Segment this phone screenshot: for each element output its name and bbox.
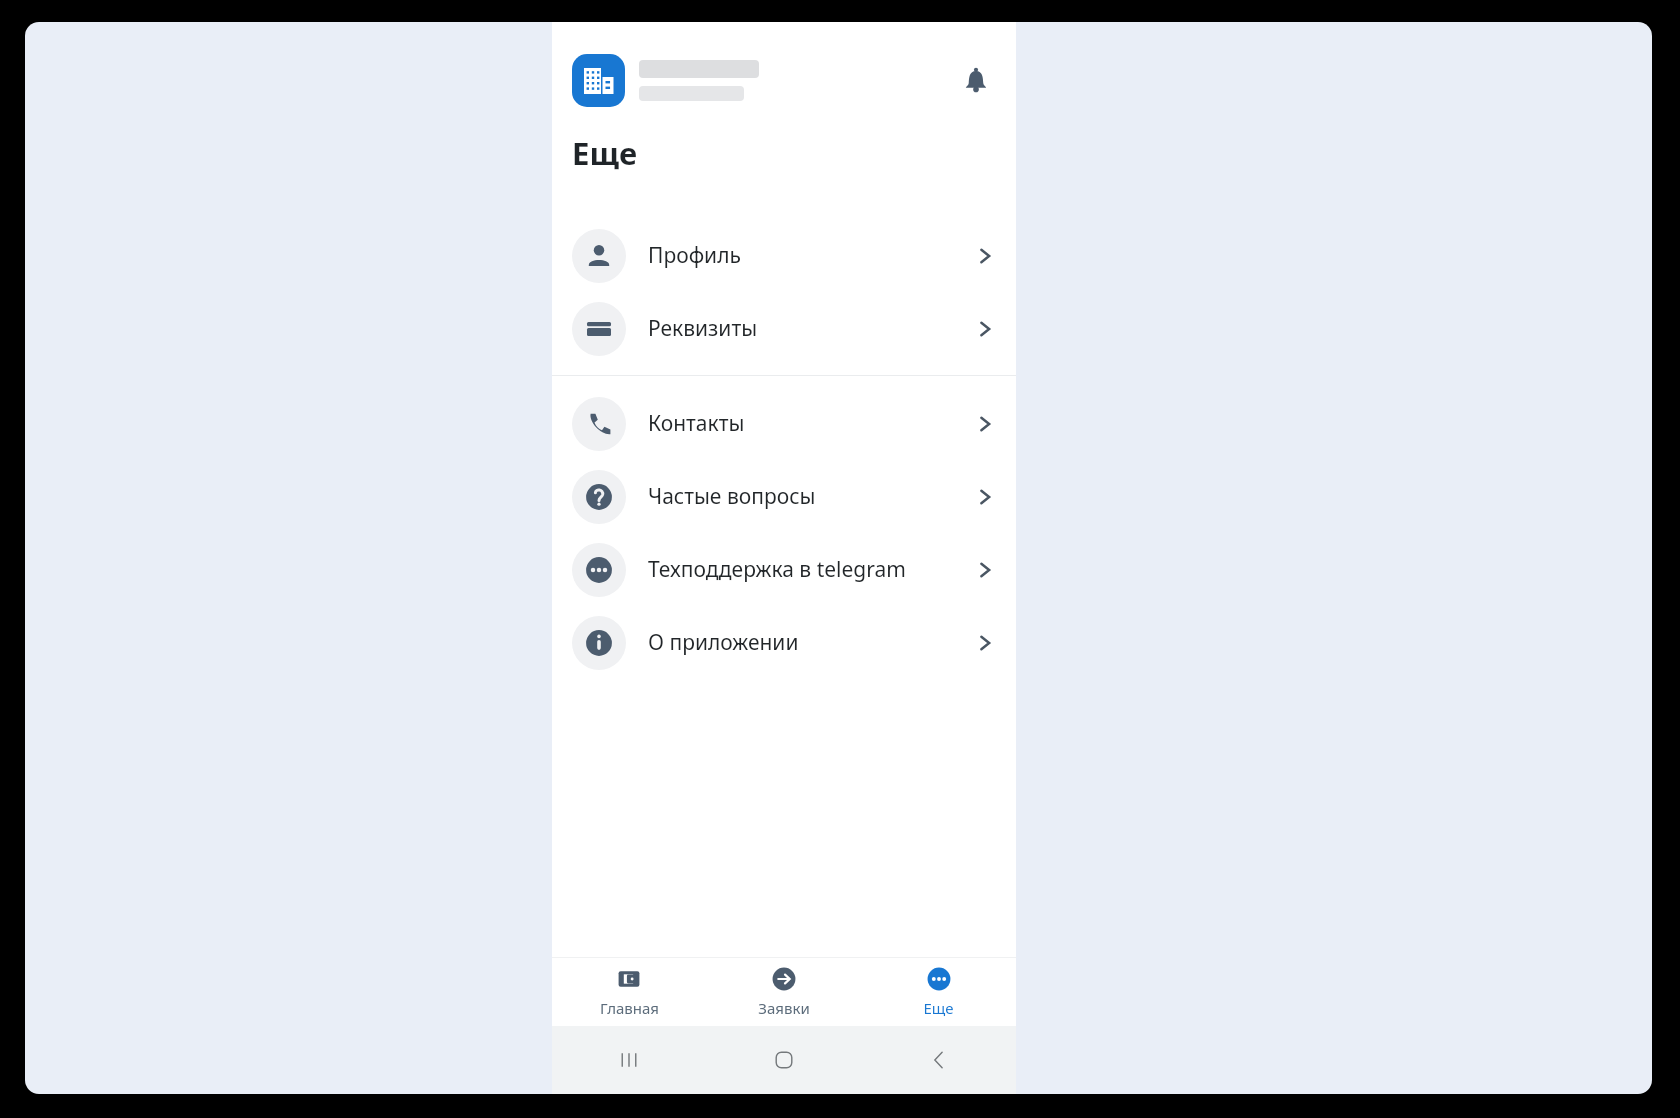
button[interactable]: Частые вопросы	[552, 460, 1016, 533]
staticText: О приложении	[648, 628, 972, 657]
button[interactable]: О приложении	[552, 606, 1016, 679]
staticText: Техподдержка в telegram	[648, 555, 972, 584]
staticText: Профиль	[648, 241, 972, 270]
button[interactable]: Главная	[552, 958, 706, 1026]
button[interactable]: Техподдержка в telegram	[552, 533, 1016, 606]
button[interactable]: Заявки	[706, 958, 861, 1026]
button[interactable]: Профиль	[552, 219, 1016, 292]
staticText: Частые вопросы	[648, 482, 972, 511]
staticText: Главная	[600, 998, 659, 1018]
button[interactable]: Еще	[861, 958, 1016, 1026]
staticText: Контакты	[648, 409, 972, 438]
button[interactable]: Company logo	[572, 54, 625, 107]
staticText: Заявки	[758, 998, 810, 1018]
button[interactable]: Контакты	[552, 387, 1016, 460]
staticText: Еще	[923, 998, 954, 1018]
button[interactable]: Notifications	[954, 59, 998, 103]
staticText: Еще	[572, 132, 638, 174]
staticText: Реквизиты	[648, 314, 972, 343]
button[interactable]: Реквизиты	[552, 292, 1016, 365]
